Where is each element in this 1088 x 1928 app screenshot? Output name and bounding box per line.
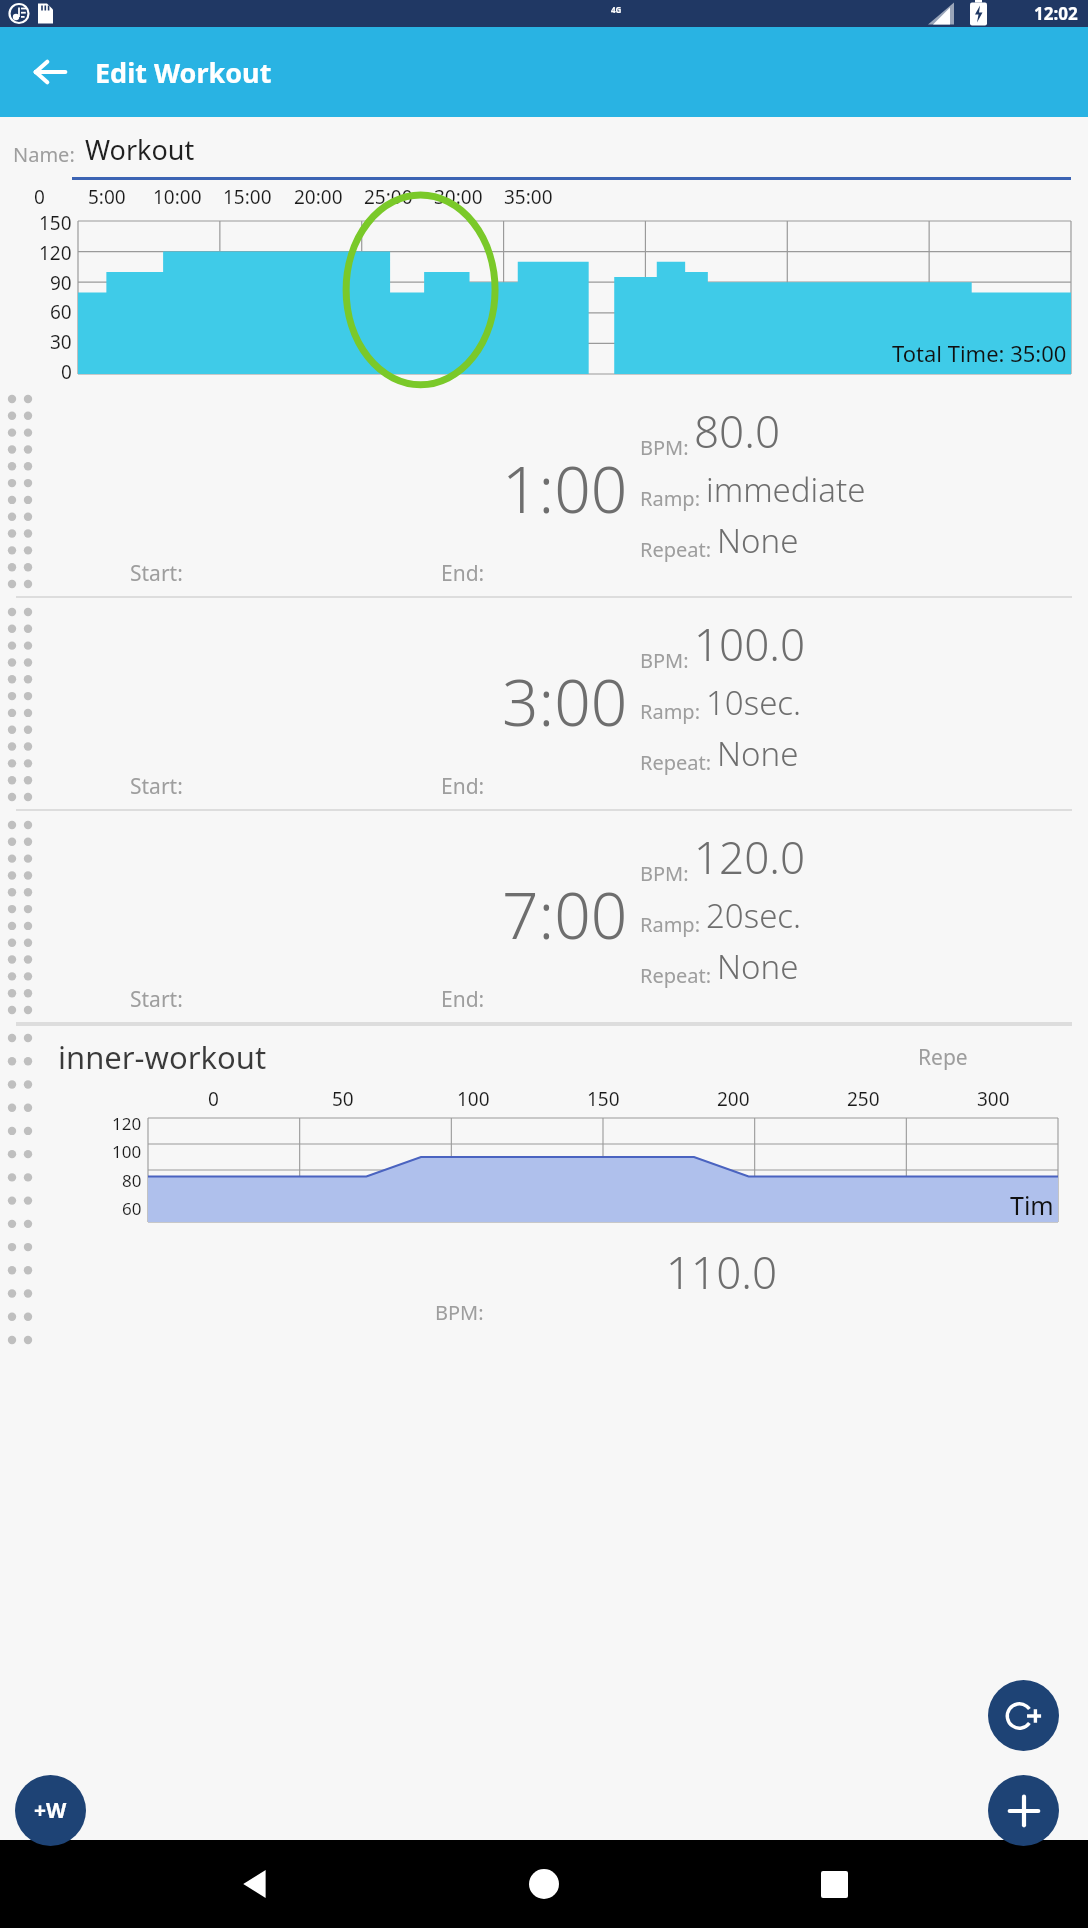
button[interactable]: Back (220, 1849, 290, 1919)
staticText: 10:00 (153, 184, 202, 210)
staticText: Start: (130, 559, 183, 588)
staticText: Ramp: (640, 698, 701, 725)
staticText: BPM: (640, 647, 689, 674)
staticText: 25:00 (364, 184, 413, 210)
staticText: Total Time: 35:00 (892, 338, 1067, 368)
staticText: 0 (61, 359, 72, 385)
staticText: 150 (587, 1086, 620, 1112)
staticText: immediate (706, 467, 866, 512)
staticText: Edit Workout (95, 54, 272, 91)
staticText: Tim (1010, 1188, 1054, 1222)
staticText: 110.0 (666, 1242, 778, 1302)
staticText: 35:00 (504, 184, 553, 210)
staticText: 120.0 (694, 827, 806, 887)
staticText: 80.0 (694, 401, 781, 461)
staticText: Repeat: (640, 536, 712, 563)
staticText: BPM: (435, 1299, 484, 1326)
staticText: 3:00 (502, 658, 628, 745)
staticText: Name: (13, 141, 75, 168)
staticText: Repe (918, 1043, 968, 1072)
staticText: End: (441, 985, 485, 1014)
staticText: 120 (39, 240, 72, 266)
staticText: 60 (50, 299, 72, 325)
button[interactable]: Add interval (988, 1775, 1059, 1846)
staticText: 12:02 (1034, 2, 1078, 25)
staticText: 100 (457, 1086, 490, 1112)
button[interactable]: Add inner workout (988, 1680, 1059, 1751)
staticText: 100 (112, 1140, 142, 1163)
staticText: 90 (50, 270, 72, 296)
staticText: 30 (50, 329, 72, 355)
staticText: End: (441, 772, 485, 801)
staticText: 120 (112, 1112, 142, 1135)
staticText: None (717, 518, 799, 563)
staticText: 80 (122, 1169, 142, 1192)
staticText: Start: (130, 772, 183, 801)
staticText: 20:00 (294, 184, 343, 210)
staticText: BPM: (640, 434, 689, 461)
staticText: 5:00 (88, 184, 126, 210)
staticText: inner-workout (58, 1036, 267, 1078)
button[interactable]: Home (509, 1849, 579, 1919)
staticText: Ramp: (640, 485, 701, 512)
staticText: 50 (332, 1086, 354, 1112)
staticText: Repeat: (640, 962, 712, 989)
staticText: None (717, 944, 799, 989)
staticText: 1:00 (502, 445, 628, 532)
button[interactable]: Recents (799, 1849, 869, 1919)
staticText: Repeat: (640, 749, 712, 776)
staticText: End: (441, 559, 485, 588)
staticText: 0 (34, 184, 45, 210)
button[interactable]: +W (15, 1775, 86, 1846)
staticText: 150 (39, 210, 72, 236)
staticText: 0 (208, 1086, 219, 1112)
staticText: Ramp: (640, 911, 701, 938)
staticText: Workout (85, 131, 195, 168)
staticText: 300 (977, 1086, 1010, 1112)
staticText: 100.0 (694, 614, 806, 674)
button[interactable]: Back (22, 44, 78, 100)
staticText: None (717, 731, 799, 776)
staticText: 10sec. (706, 680, 802, 725)
staticText: 15:00 (223, 184, 272, 210)
staticText: 30:00 (434, 184, 483, 210)
staticText: 7:00 (502, 871, 628, 958)
staticText: 4G (611, 4, 622, 15)
staticText: Start: (130, 985, 183, 1014)
staticText: 250 (847, 1086, 880, 1112)
staticText: 200 (717, 1086, 750, 1112)
staticText: BPM: (640, 860, 689, 887)
staticText: +W (34, 1796, 67, 1825)
staticText: 60 (122, 1197, 142, 1220)
staticText: 20sec. (706, 893, 802, 938)
